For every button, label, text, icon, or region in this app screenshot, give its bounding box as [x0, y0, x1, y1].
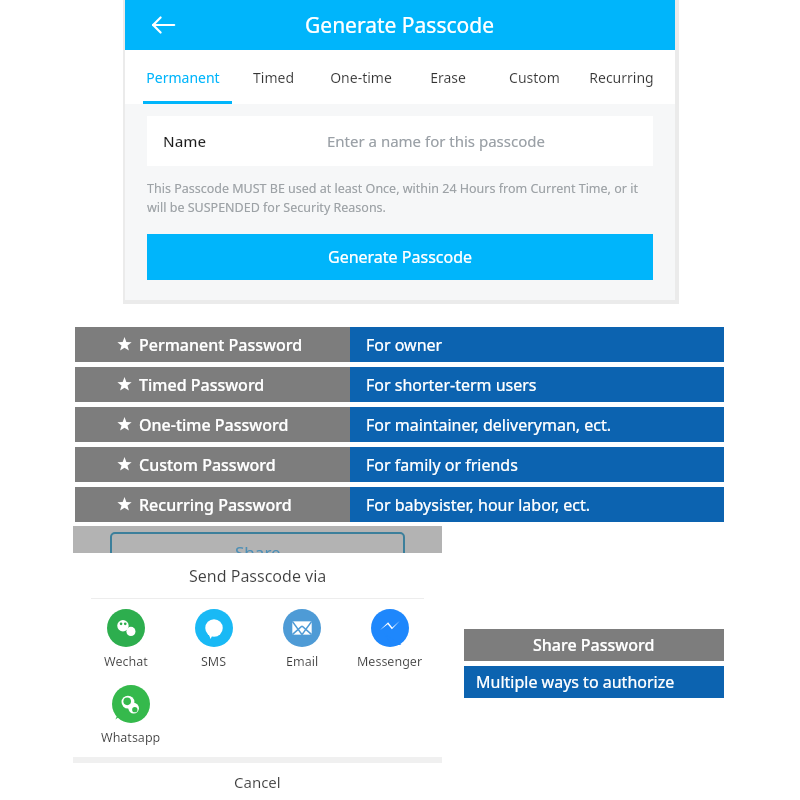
staticText: SMS: [201, 653, 227, 670]
button[interactable]: Erase: [404, 50, 491, 104]
staticText: Whatsapp: [101, 729, 161, 746]
staticText: Custom Password: [139, 454, 276, 476]
button[interactable]: Wechat: [81, 609, 170, 670]
staticText: Generate Passcode: [328, 246, 473, 268]
button[interactable]: Timed Password: [75, 367, 724, 402]
staticText: Permanent: [146, 68, 220, 87]
staticText: Enter a name for this passcode: [327, 131, 545, 151]
staticText: Generate Passcode: [305, 11, 495, 40]
button[interactable]: Share Password: [464, 629, 724, 661]
staticText: Recurring: [589, 68, 654, 87]
button[interactable]: One-time: [317, 50, 404, 104]
staticText: For family or friends: [366, 454, 518, 476]
staticText: For owner: [366, 334, 443, 356]
button[interactable]: Cancel: [73, 763, 442, 800]
staticText: Recurring Password: [139, 494, 292, 516]
staticText: Cancel: [234, 772, 281, 792]
button[interactable]: Multiple ways to authorize: [464, 666, 724, 698]
button[interactable]: Custom Password: [75, 447, 724, 482]
staticText: Erase: [430, 68, 466, 87]
staticText: Email: [286, 653, 319, 670]
button[interactable]: Messenger: [346, 609, 434, 670]
staticText: Messenger: [357, 653, 423, 670]
staticText: For maintainer, deliveryman, ect.: [366, 414, 612, 436]
staticText: Multiple ways to authorize: [476, 671, 675, 693]
staticText: For babysister, hour labor, ect.: [366, 494, 591, 516]
staticText: One-time Password: [139, 414, 289, 436]
button[interactable]: Permanent Password: [75, 327, 724, 362]
staticText: Name: [163, 131, 207, 151]
button[interactable]: Recurring Password: [75, 487, 724, 522]
button[interactable]: One-time Password: [75, 407, 724, 442]
button[interactable]: Whatsapp: [93, 685, 169, 746]
button[interactable]: Generate Passcode: [147, 234, 653, 280]
button[interactable]: Name: [147, 116, 653, 166]
staticText: One-time: [330, 68, 392, 87]
staticText: Custom: [509, 68, 560, 87]
staticText: Timed Password: [139, 374, 265, 396]
button[interactable]: Email: [258, 609, 346, 670]
staticText: For shorter-term users: [366, 374, 537, 396]
staticText: Timed: [253, 68, 294, 87]
button[interactable]: SMS: [170, 609, 258, 670]
button[interactable]: Recurring: [578, 50, 665, 104]
button[interactable]: Back: [147, 8, 181, 42]
staticText: Share: [235, 541, 281, 564]
button[interactable]: Permanent: [135, 50, 230, 104]
staticText: This Passcode MUST BE used at least Once…: [147, 180, 653, 216]
staticText: Wechat: [104, 653, 148, 670]
button[interactable]: Timed: [230, 50, 317, 104]
button[interactable]: Custom: [491, 50, 578, 104]
button[interactable]: Share: [110, 532, 405, 572]
staticText: Share Password: [533, 634, 655, 656]
staticText: Send Passcode via: [189, 565, 327, 587]
staticText: Permanent Password: [139, 334, 303, 356]
